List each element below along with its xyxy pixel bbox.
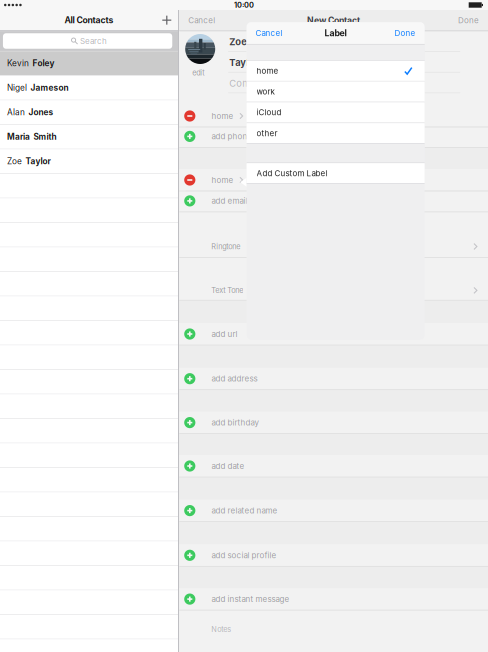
staticText: add address: [211, 374, 257, 384]
button[interactable]: Add Custom Label: [247, 163, 425, 183]
button[interactable]: home: [184, 169, 488, 191]
staticText: Cancel: [188, 16, 215, 25]
staticText: All Contacts: [64, 15, 113, 25]
staticText: home: [257, 66, 279, 76]
button[interactable]: add phone: [184, 125, 488, 147]
staticText: Taylor: [25, 156, 50, 166]
button[interactable]: Nigel: [0, 76, 178, 100]
staticText: add birthday: [211, 418, 258, 427]
button[interactable]: add email: [184, 190, 488, 212]
button[interactable]: Zoe: [0, 149, 178, 173]
button[interactable]: home: [184, 105, 488, 127]
staticText: add social profile: [211, 550, 276, 560]
staticText: add url: [211, 329, 237, 339]
staticText: iCloud: [257, 108, 282, 117]
staticText: Done: [458, 16, 479, 25]
button[interactable]: iCloud: [247, 102, 425, 122]
staticText: Zoe: [229, 36, 247, 47]
staticText: Maria: [7, 132, 30, 142]
staticText: Notes: [211, 625, 231, 634]
staticText: Text Tone: [211, 286, 243, 295]
staticText: edit: [192, 68, 204, 77]
staticText: Done: [395, 28, 416, 38]
button[interactable]: Done: [458, 6, 488, 25]
button[interactable]: Cancel: [179, 6, 215, 25]
button[interactable]: Alan: [0, 100, 178, 124]
staticText: home: [211, 175, 233, 185]
button[interactable]: Search contacts: [0, 31, 178, 51]
button[interactable]: add birthday: [184, 412, 488, 434]
staticText: Cancel: [256, 28, 283, 38]
staticText: Ringtone: [211, 242, 240, 251]
staticText: Taylor: [229, 57, 259, 68]
staticText: home: [211, 111, 233, 121]
button[interactable]: Kevin: [0, 51, 178, 75]
button[interactable]: add address: [184, 368, 488, 390]
staticText: Search: [80, 36, 107, 46]
staticText: Label: [325, 28, 347, 38]
staticText: Foley: [32, 58, 54, 68]
staticText: Zoe: [7, 156, 22, 166]
staticText: add phone: [211, 132, 252, 141]
button[interactable]: add related name: [184, 500, 488, 522]
staticText: Company: [229, 78, 271, 89]
button[interactable]: Done: [395, 28, 425, 38]
button[interactable]: add instant message: [184, 588, 488, 610]
staticText: New Contact: [307, 15, 360, 26]
button[interactable]: Text Tone: [179, 279, 488, 301]
button[interactable]: work: [247, 82, 425, 102]
staticText: Jones: [28, 107, 53, 117]
staticText: add instant message: [211, 594, 289, 604]
staticText: add email: [211, 196, 247, 206]
staticText: Jameson: [30, 83, 68, 93]
button[interactable]: add social profile: [184, 544, 488, 566]
button[interactable]: Ringtone: [179, 235, 488, 257]
button[interactable]: other: [247, 123, 425, 143]
button[interactable]: add url: [184, 323, 488, 345]
staticText: other: [257, 128, 278, 138]
button[interactable]: Add contact: [157, 10, 177, 30]
button[interactable]: Maria: [0, 125, 178, 149]
button[interactable]: add date: [184, 455, 488, 477]
staticText: Nigel: [7, 83, 27, 93]
staticText: 10:00: [234, 1, 254, 9]
button[interactable]: Cancel: [247, 28, 283, 38]
staticText: work: [257, 87, 275, 96]
staticText: Smith: [33, 132, 56, 142]
staticText: Kevin: [7, 58, 29, 68]
staticText: add related name: [211, 506, 277, 515]
staticText: Add Custom Label: [257, 168, 328, 178]
button[interactable]: home: [247, 61, 425, 81]
staticText: Alan: [7, 107, 25, 117]
staticText: add date: [211, 461, 244, 471]
